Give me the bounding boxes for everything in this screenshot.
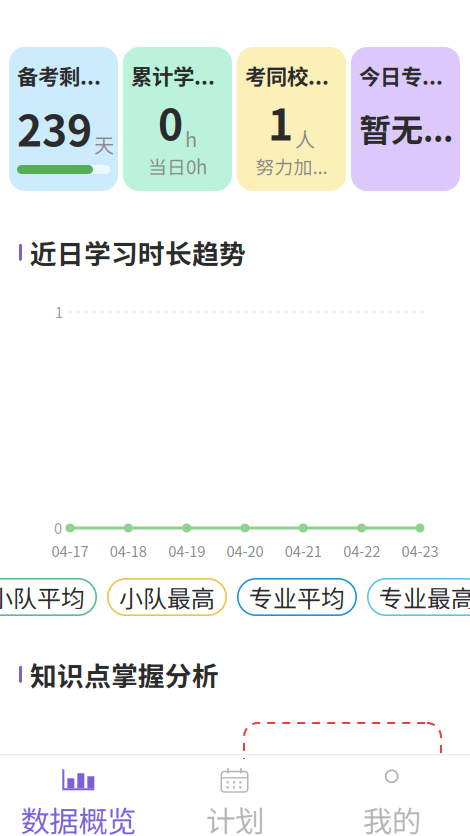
button[interactable]: 小队最高 <box>107 578 227 616</box>
button[interactable]: 专业平均 <box>237 578 357 616</box>
staticText: 努力加... <box>255 153 327 180</box>
button[interactable]: 小队平均 <box>0 578 97 616</box>
staticText: 0 <box>54 517 62 538</box>
staticText: 计划 <box>206 798 264 836</box>
staticText: 04-23 <box>401 540 438 561</box>
button[interactable]: 备考剩... <box>9 47 118 191</box>
staticText: 239 <box>17 97 92 159</box>
button[interactable]: 数据概览 <box>0 768 157 836</box>
staticText: 1 <box>55 301 63 322</box>
staticText: 今日专... <box>359 60 443 91</box>
button[interactable]: 我的 <box>313 768 470 836</box>
staticText: 04-21 <box>285 540 322 561</box>
staticText: 近日学习时长趋势 <box>30 233 246 272</box>
staticText: 1 <box>268 91 293 153</box>
staticText: 知识点掌握分析 <box>30 655 219 694</box>
staticText: 暂无... <box>359 105 453 151</box>
staticText: 考同校... <box>245 60 329 91</box>
staticText: 备考剩... <box>17 60 101 91</box>
staticText: 我的 <box>363 798 421 836</box>
button[interactable]: 考同校... <box>237 47 346 191</box>
staticText: 04-19 <box>168 540 205 561</box>
button[interactable]: 今日专... <box>351 47 460 191</box>
staticText: h <box>185 124 197 153</box>
button[interactable]: 累计学... <box>123 47 232 191</box>
staticText: 数据概览 <box>20 798 136 836</box>
staticText: 累计学... <box>131 60 215 91</box>
staticText: 04-17 <box>51 540 88 561</box>
staticText: 小队最高 <box>119 580 215 614</box>
button[interactable]: 计划 <box>157 768 313 836</box>
staticText: 04-20 <box>226 540 263 561</box>
staticText: 04-22 <box>343 540 380 561</box>
staticText: 天 <box>94 130 114 159</box>
staticText: 专业最高 <box>379 580 470 614</box>
staticText: 当日0h <box>148 153 207 180</box>
staticText: 0 <box>158 91 183 153</box>
button[interactable]: 专业最高 <box>367 578 470 616</box>
staticText: 小队平均 <box>0 580 85 614</box>
staticText: 人 <box>295 124 315 153</box>
staticText: 专业平均 <box>249 580 345 614</box>
staticText: 04-18 <box>110 540 147 561</box>
